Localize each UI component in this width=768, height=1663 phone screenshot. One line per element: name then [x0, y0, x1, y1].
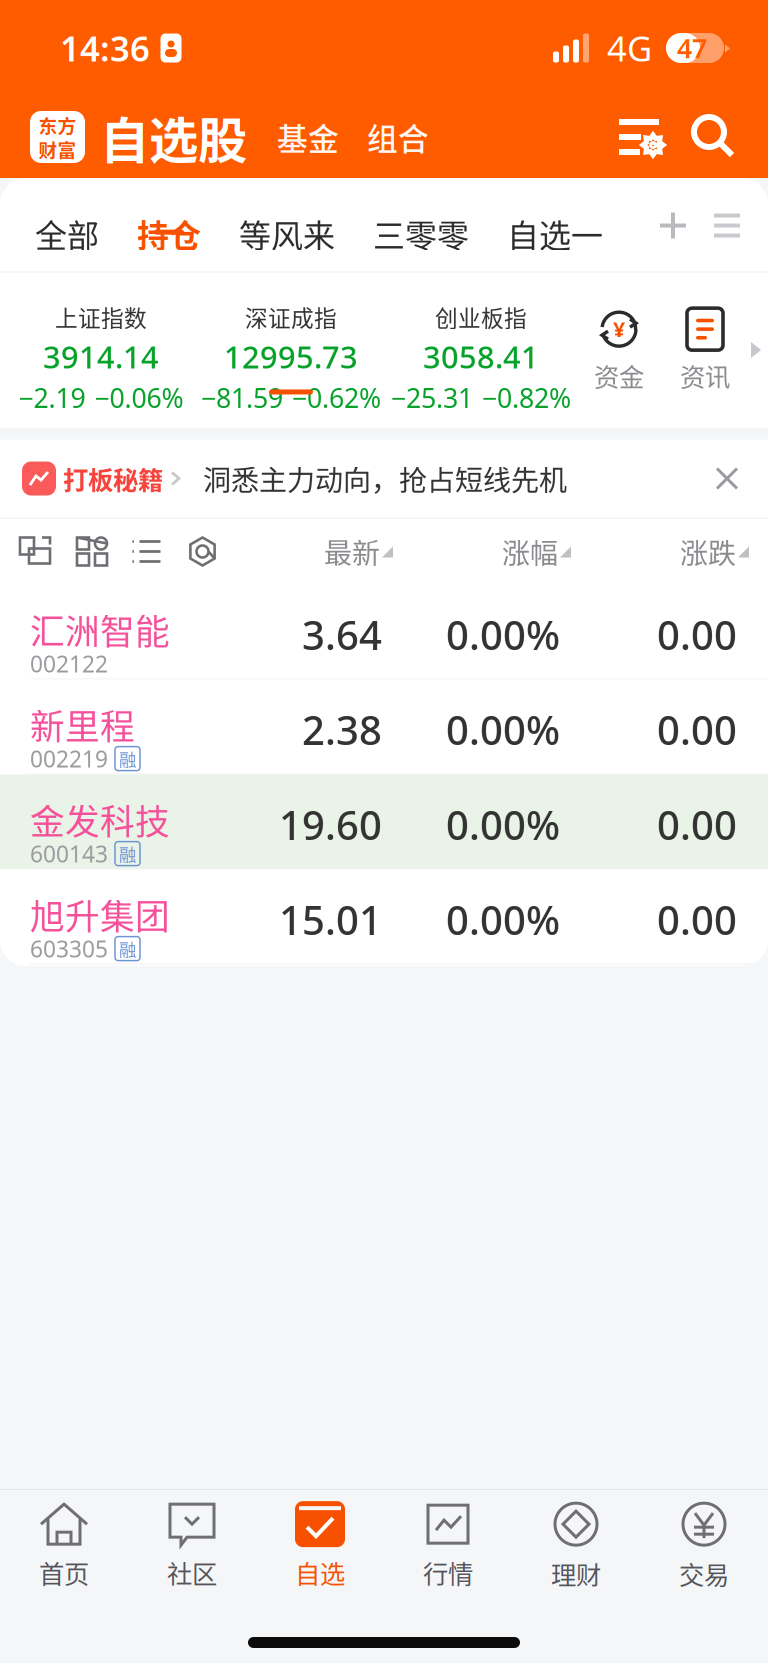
staticText: 19.60	[279, 798, 382, 851]
staticText: 14:36	[60, 25, 150, 71]
staticText: 打板秘籍	[63, 460, 163, 497]
button[interactable]: 旭升集团	[0, 869, 768, 964]
staticText: 002219	[30, 743, 108, 774]
button[interactable]: Search	[680, 104, 746, 170]
button[interactable]: 新里程	[0, 679, 768, 774]
staticText: −81.59	[201, 380, 283, 415]
button[interactable]: Settings	[604, 104, 674, 170]
staticText: 自选一	[507, 210, 603, 257]
staticText: 最新	[324, 531, 380, 572]
staticText: 持仓	[137, 210, 201, 257]
staticText: 15.01	[279, 893, 382, 946]
staticText: 0.00	[657, 893, 737, 946]
button[interactable]: 持仓	[118, 179, 220, 271]
staticText: 自选	[295, 1554, 345, 1591]
button[interactable]: 创业板指	[386, 272, 576, 427]
staticText: 603305	[30, 933, 108, 964]
staticText: 资讯	[680, 357, 730, 394]
staticText: 社区	[167, 1554, 217, 1591]
staticText: 3914.14	[43, 336, 159, 377]
staticText: 600143	[30, 838, 108, 869]
staticText: 0.00%	[446, 703, 560, 756]
staticText: 0.00	[657, 798, 737, 851]
button[interactable]: 自选一	[488, 179, 622, 271]
button[interactable]: ¥	[576, 272, 662, 427]
staticText: 基金	[277, 115, 339, 159]
button[interactable]: 理财	[512, 1490, 640, 1602]
staticText: 理财	[551, 1555, 601, 1592]
button[interactable]: 资讯	[662, 272, 748, 427]
button[interactable]: Close	[704, 455, 750, 501]
button[interactable]: 首页	[0, 1490, 128, 1602]
staticText: ¥	[613, 315, 625, 343]
staticText: 3058.41	[423, 336, 539, 377]
staticText: 0.00	[657, 608, 737, 661]
staticText: 新里程	[30, 699, 135, 750]
button[interactable]: 交易	[640, 1490, 768, 1602]
staticText: 融	[119, 936, 136, 961]
staticText: 融	[119, 841, 136, 866]
staticText: 0.00%	[446, 798, 560, 851]
button[interactable]: 涨跌	[574, 518, 752, 584]
staticText: 12995.73	[224, 336, 358, 377]
staticText: 创业板指	[435, 300, 527, 333]
staticText: 自选股	[100, 101, 247, 173]
staticText: 旭升集团	[30, 889, 170, 940]
staticText: 47	[677, 30, 707, 66]
staticText: 金发科技	[30, 794, 170, 845]
staticText: 上证指数	[55, 300, 147, 333]
button[interactable]: Layout	[7, 524, 65, 578]
staticText: 0.00%	[446, 608, 560, 661]
staticText: 汇洲智能	[30, 604, 170, 655]
staticText: 行情	[423, 1554, 473, 1591]
staticText: 0.00%	[446, 893, 560, 946]
staticText: 东方	[38, 111, 76, 138]
button[interactable]: 三零零	[354, 179, 488, 271]
staticText: 深证成指	[245, 300, 337, 333]
staticText: 首页	[39, 1554, 89, 1591]
button[interactable]: Add group	[646, 198, 700, 252]
button[interactable]: 社区	[128, 1490, 256, 1602]
staticText: 2.38	[302, 703, 382, 756]
staticText: 交易	[679, 1555, 729, 1592]
staticText: 三零零	[373, 210, 469, 257]
button[interactable]: Grid view	[65, 524, 119, 578]
staticText: −0.62%	[292, 380, 381, 415]
button[interactable]: 深证成指	[196, 272, 386, 427]
staticText: 002122	[30, 648, 108, 679]
staticText: 0.00	[657, 703, 737, 756]
staticText: −2.19	[18, 380, 85, 415]
staticText: 全部	[35, 210, 99, 257]
button[interactable]: 全部	[16, 179, 118, 271]
staticText: 3.64	[302, 608, 382, 661]
button[interactable]: 最新	[231, 518, 396, 584]
staticText: −0.82%	[482, 380, 571, 415]
button[interactable]: 基金	[263, 103, 353, 171]
staticText: 组合	[367, 115, 429, 159]
button[interactable]: 金发科技	[0, 774, 768, 869]
button[interactable]: List view	[119, 527, 174, 575]
staticText: 洞悉主力动向，抢占短线先机	[203, 458, 567, 499]
button[interactable]: 上证指数	[6, 272, 196, 427]
button[interactable]: Manage groups	[700, 201, 754, 249]
staticText: 资金	[594, 357, 644, 394]
button[interactable]: 组合	[353, 103, 443, 171]
staticText: 等风来	[239, 210, 335, 257]
button[interactable]: 行情	[384, 1490, 512, 1602]
staticText: −25.31	[391, 380, 473, 415]
staticText: 4G	[607, 25, 652, 71]
button[interactable]: 等风来	[220, 179, 354, 271]
staticText: 涨幅	[502, 531, 558, 572]
button[interactable]: Options	[174, 523, 231, 579]
staticText: 涨跌	[680, 531, 736, 572]
button[interactable]: 涨幅	[396, 518, 574, 584]
button[interactable]: 打板秘籍	[22, 460, 184, 497]
button[interactable]: 汇洲智能	[0, 584, 768, 679]
staticText: −0.06%	[94, 380, 183, 415]
button[interactable]: 自选	[256, 1490, 384, 1602]
staticText: 融	[119, 746, 136, 771]
staticText: 财富	[38, 135, 76, 162]
